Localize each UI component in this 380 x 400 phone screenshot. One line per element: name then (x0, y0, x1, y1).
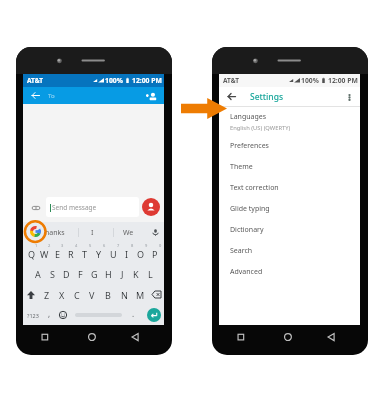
staticText: Languages (230, 112, 267, 122)
button[interactable]: Back (29, 89, 42, 102)
staticText: 5 (89, 243, 92, 248)
button[interactable]: Back (225, 90, 238, 103)
staticText: V (89, 289, 95, 301)
button[interactable]: Languages (219, 109, 360, 135)
staticText: hanks (45, 228, 65, 238)
button[interactable]: 3 (51, 241, 64, 263)
staticText: Dictionary (230, 225, 264, 235)
button[interactable]: L (143, 263, 157, 284)
button[interactable]: M (132, 284, 148, 305)
staticText: 2 (48, 243, 51, 248)
staticText: 12:00 PM (328, 76, 358, 85)
button[interactable]: Preferences (219, 135, 360, 156)
button[interactable]: 5 (78, 241, 92, 263)
button[interactable]: 6 (92, 241, 106, 263)
button[interactable]: . (127, 305, 139, 325)
button[interactable]: G (87, 263, 101, 284)
staticText: 12:00 PM (132, 76, 162, 85)
button[interactable]: Text correction (219, 177, 360, 198)
button[interactable]: Advanced (219, 261, 360, 282)
button[interactable]: Google (29, 225, 42, 238)
staticText: 8 (131, 243, 134, 248)
staticText: L (148, 268, 153, 280)
staticText: Search (230, 246, 253, 256)
button[interactable]: C (69, 284, 84, 305)
button[interactable]: Enter (147, 308, 161, 322)
button[interactable]: More options (343, 91, 355, 103)
button[interactable]: Shift (23, 284, 39, 305)
button[interactable]: Voice input (150, 227, 161, 238)
staticText: Preferences (230, 141, 269, 151)
staticText: A (35, 268, 41, 280)
staticText: U (110, 248, 117, 260)
staticText: 9 (145, 243, 148, 248)
staticText: O (137, 248, 145, 260)
staticText: C (74, 289, 80, 301)
staticText: 0 (159, 243, 162, 248)
staticText: , (48, 308, 51, 319)
staticText: X (59, 289, 65, 301)
staticText: Z (44, 289, 50, 301)
button[interactable]: D (59, 263, 73, 284)
button[interactable]: Emoji (57, 305, 69, 325)
staticText: ?123 (27, 312, 39, 319)
staticText: English (US) (QWERTY) (230, 124, 291, 132)
staticText: Send message (52, 203, 97, 212)
staticText: Glide typing (230, 204, 270, 214)
staticText: To (48, 92, 55, 100)
button[interactable]: Theme (219, 156, 360, 177)
staticText: P (152, 248, 158, 260)
staticText: R (68, 248, 74, 260)
button[interactable]: Attach file (29, 201, 42, 214)
other: Next step (181, 98, 227, 119)
button[interactable]: , (43, 305, 56, 325)
button[interactable]: 2 (38, 241, 51, 263)
button[interactable]: 9 (134, 241, 148, 263)
button[interactable]: Space (71, 305, 126, 325)
button[interactable]: 0 (148, 241, 162, 263)
button[interactable]: B (100, 284, 116, 305)
staticText: B (105, 289, 111, 301)
staticText: AT&T (223, 76, 239, 85)
staticText: I (91, 228, 94, 238)
button[interactable]: F (73, 263, 87, 284)
staticText: D (63, 268, 70, 280)
button[interactable]: ?123 (24, 305, 41, 325)
button[interactable]: H (101, 263, 115, 284)
staticText: W (40, 248, 49, 260)
button[interactable]: Add person (144, 89, 158, 103)
staticText: S (50, 268, 55, 280)
staticText: 3 (61, 243, 64, 248)
button[interactable]: J (115, 263, 129, 284)
staticText: We (123, 228, 134, 238)
staticText: E (55, 248, 61, 260)
staticText: AT&T (27, 76, 43, 85)
staticText: 100% (105, 76, 123, 85)
button[interactable]: Search (219, 240, 360, 261)
button[interactable]: S (45, 263, 59, 284)
button[interactable]: Glide typing (219, 198, 360, 219)
staticText: 1 (35, 243, 38, 248)
button[interactable]: 8 (120, 241, 134, 263)
staticText: 7 (117, 243, 120, 248)
button[interactable]: Send message (46, 197, 139, 217)
button[interactable]: 4 (64, 241, 78, 263)
button[interactable]: 1 (25, 241, 38, 263)
button[interactable]: A (30, 263, 45, 284)
button[interactable]: Dictionary (219, 219, 360, 240)
button[interactable]: X (54, 284, 69, 305)
staticText: Advanced (230, 267, 263, 277)
button[interactable]: N (116, 284, 132, 305)
staticText: N (121, 289, 128, 301)
staticText: M (136, 289, 145, 301)
button[interactable]: Recipient (142, 198, 160, 216)
staticText: Y (96, 248, 102, 260)
button[interactable]: V (84, 284, 100, 305)
staticText: F (78, 268, 83, 280)
staticText: . (132, 308, 135, 319)
button[interactable]: Z (39, 284, 54, 305)
button[interactable]: K (129, 263, 143, 284)
staticText: Text correction (230, 183, 279, 193)
button[interactable]: Backspace (148, 284, 164, 305)
button[interactable]: 7 (106, 241, 120, 263)
